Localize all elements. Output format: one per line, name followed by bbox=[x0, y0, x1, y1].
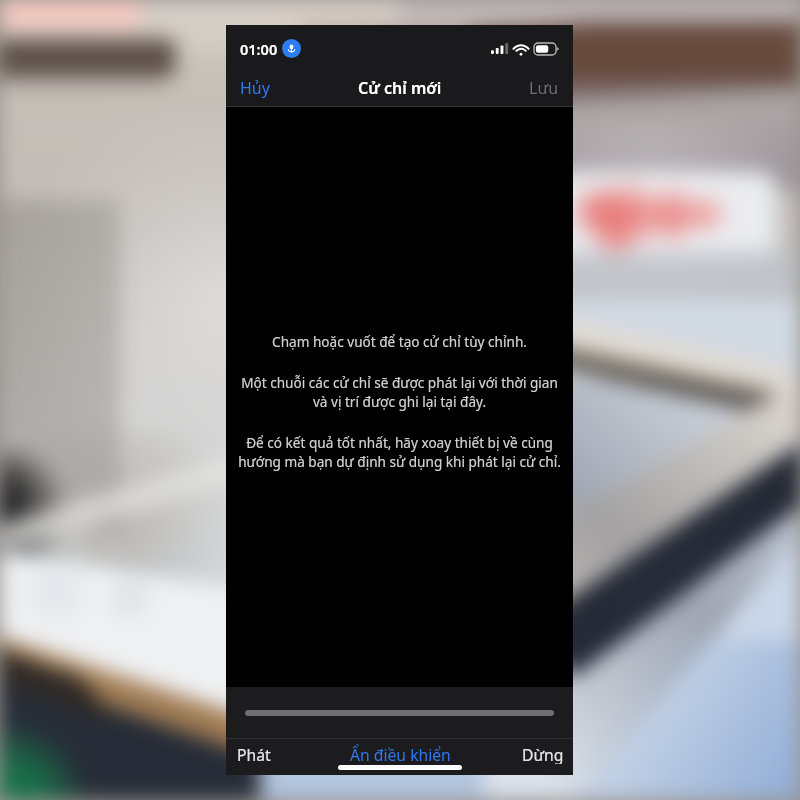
staticText: Phát bbox=[237, 744, 271, 764]
button[interactable]: Hủy bbox=[226, 69, 287, 107]
button[interactable]: Phát bbox=[226, 739, 281, 769]
button[interactable]: Dừng bbox=[512, 739, 573, 769]
staticText: Cử chỉ mới bbox=[358, 77, 442, 99]
staticText: Dừng bbox=[522, 744, 564, 764]
staticText: Lưu bbox=[529, 77, 559, 99]
staticText: 01:00 bbox=[240, 39, 278, 59]
staticText: Hủy bbox=[240, 77, 270, 99]
other: Microphone in use bbox=[282, 39, 301, 58]
button[interactable]: Playback position bbox=[226, 687, 573, 738]
staticText: Chạm hoặc vuốt để tạo cử chỉ tùy chỉnh. bbox=[272, 332, 527, 351]
button[interactable]: Lưu bbox=[512, 69, 573, 107]
button[interactable]: Ẩn điều khiển bbox=[340, 739, 461, 769]
staticText: Để có kết quả tốt nhất, hãy xoay thiết b… bbox=[238, 433, 561, 471]
staticText: Một chuỗi các cử chỉ sẽ được phát lại vớ… bbox=[241, 373, 558, 411]
staticText: Ẩn điều khiển bbox=[350, 744, 451, 764]
